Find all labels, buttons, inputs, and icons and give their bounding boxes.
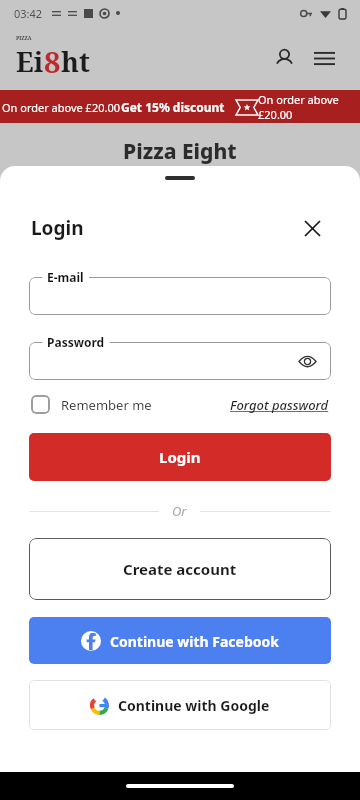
staticText: Or [172, 502, 187, 520]
staticText: Password [47, 334, 105, 350]
button[interactable]: Show password [29, 342, 331, 380]
staticText: 8 [44, 42, 61, 81]
button[interactable] [29, 277, 331, 315]
staticText: Forgot password [230, 396, 329, 414]
staticText: Continue with Facebook [110, 632, 279, 651]
staticText: Create account [123, 559, 237, 579]
button[interactable]: Continue with Google [29, 680, 331, 730]
button[interactable]: Account [264, 38, 304, 78]
button[interactable]: Menu [304, 38, 344, 78]
button[interactable]: Forgot password [230, 396, 329, 414]
staticText: Continue with Google [118, 696, 270, 715]
staticText: Remember me [61, 396, 152, 414]
button[interactable]: Remember me [31, 395, 152, 414]
staticText: On order above £20.00 [258, 92, 360, 122]
button[interactable]: Continue with Facebook [29, 617, 331, 664]
staticText: Pizza Eight [123, 137, 237, 166]
staticText: On order above £20.00 [2, 100, 121, 115]
staticText: Get 15% discount [121, 99, 225, 115]
staticText: Ei [16, 43, 44, 80]
button[interactable]: Close [295, 211, 329, 245]
staticText: Login [159, 447, 201, 467]
button[interactable]: Show password [296, 350, 318, 372]
staticText: ht [61, 43, 90, 80]
button[interactable]: Login [29, 433, 331, 481]
button[interactable]: Create account [29, 538, 331, 600]
staticText: PIZZA [16, 35, 32, 42]
staticText: 03:42 [14, 6, 43, 21]
staticText: Login [31, 215, 84, 241]
staticText: E-mail [47, 269, 84, 285]
